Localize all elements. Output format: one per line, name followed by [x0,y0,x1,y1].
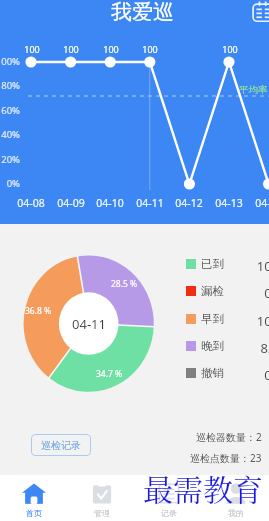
button[interactable]: 晚到 [186,338,269,354]
staticText: 80% [0,79,20,92]
staticText: 20% [0,153,20,166]
staticText: 04-11 [130,196,170,210]
staticText: 平均率 [239,84,268,96]
staticText: 100 [238,312,269,328]
staticText: 管理 [94,508,110,518]
staticText: 0% [0,177,20,190]
button[interactable]: 记录 [135,475,202,521]
staticText: 40% [0,128,20,141]
staticText: 巡检器数量：2 [196,430,262,444]
button[interactable]: 巡检记录 [31,434,91,456]
staticText: 晚到 [201,339,224,353]
staticText: 60% [0,104,20,117]
staticText: 36.8 % [18,305,58,317]
button[interactable]: 管理 [68,475,135,521]
staticText: 100 [211,43,249,55]
staticText: 82 [238,339,269,355]
staticText: 首页 [26,508,42,518]
button[interactable]: 早到 [186,311,269,327]
button[interactable]: 首页 [0,475,68,521]
staticText: 100% [0,55,20,68]
staticText: 100 [13,43,51,55]
staticText: 100 [131,43,169,55]
staticText: 早到 [201,312,224,326]
staticText: 记录 [161,508,177,518]
staticText: 撤销 [201,366,224,380]
staticText: 04-11 [59,315,119,333]
staticText: 我的 [228,508,244,518]
button[interactable]: 我的 [202,475,269,521]
staticText: 04-14 [249,196,269,210]
button[interactable]: 已到 [186,256,269,272]
staticText: 04-08 [11,196,51,210]
button[interactable]: 撤销 [186,365,269,381]
staticText: 最需教育 [143,466,263,509]
staticText: 0 [238,284,269,300]
staticText: 我爱巡 [111,0,174,25]
staticText: 04-13 [209,196,249,210]
staticText: 巡检点数量：23 [190,451,262,465]
staticText: 巡检记录 [41,439,81,452]
button[interactable]: 漏检 [186,283,269,299]
staticText: 100 [52,43,90,55]
staticText: 04-09 [51,196,91,210]
staticText: 100 [238,257,269,273]
staticText: 0 [238,366,269,382]
staticText: 04-12 [169,196,209,210]
button[interactable]: Calendar [252,1,269,23]
staticText: 28.5 % [104,278,144,290]
staticText: 漏检 [201,284,224,298]
staticText: 34.7 % [89,368,129,380]
staticText: 已到 [201,257,224,271]
staticText: 04-10 [90,196,130,210]
staticText: 100 [92,43,130,55]
